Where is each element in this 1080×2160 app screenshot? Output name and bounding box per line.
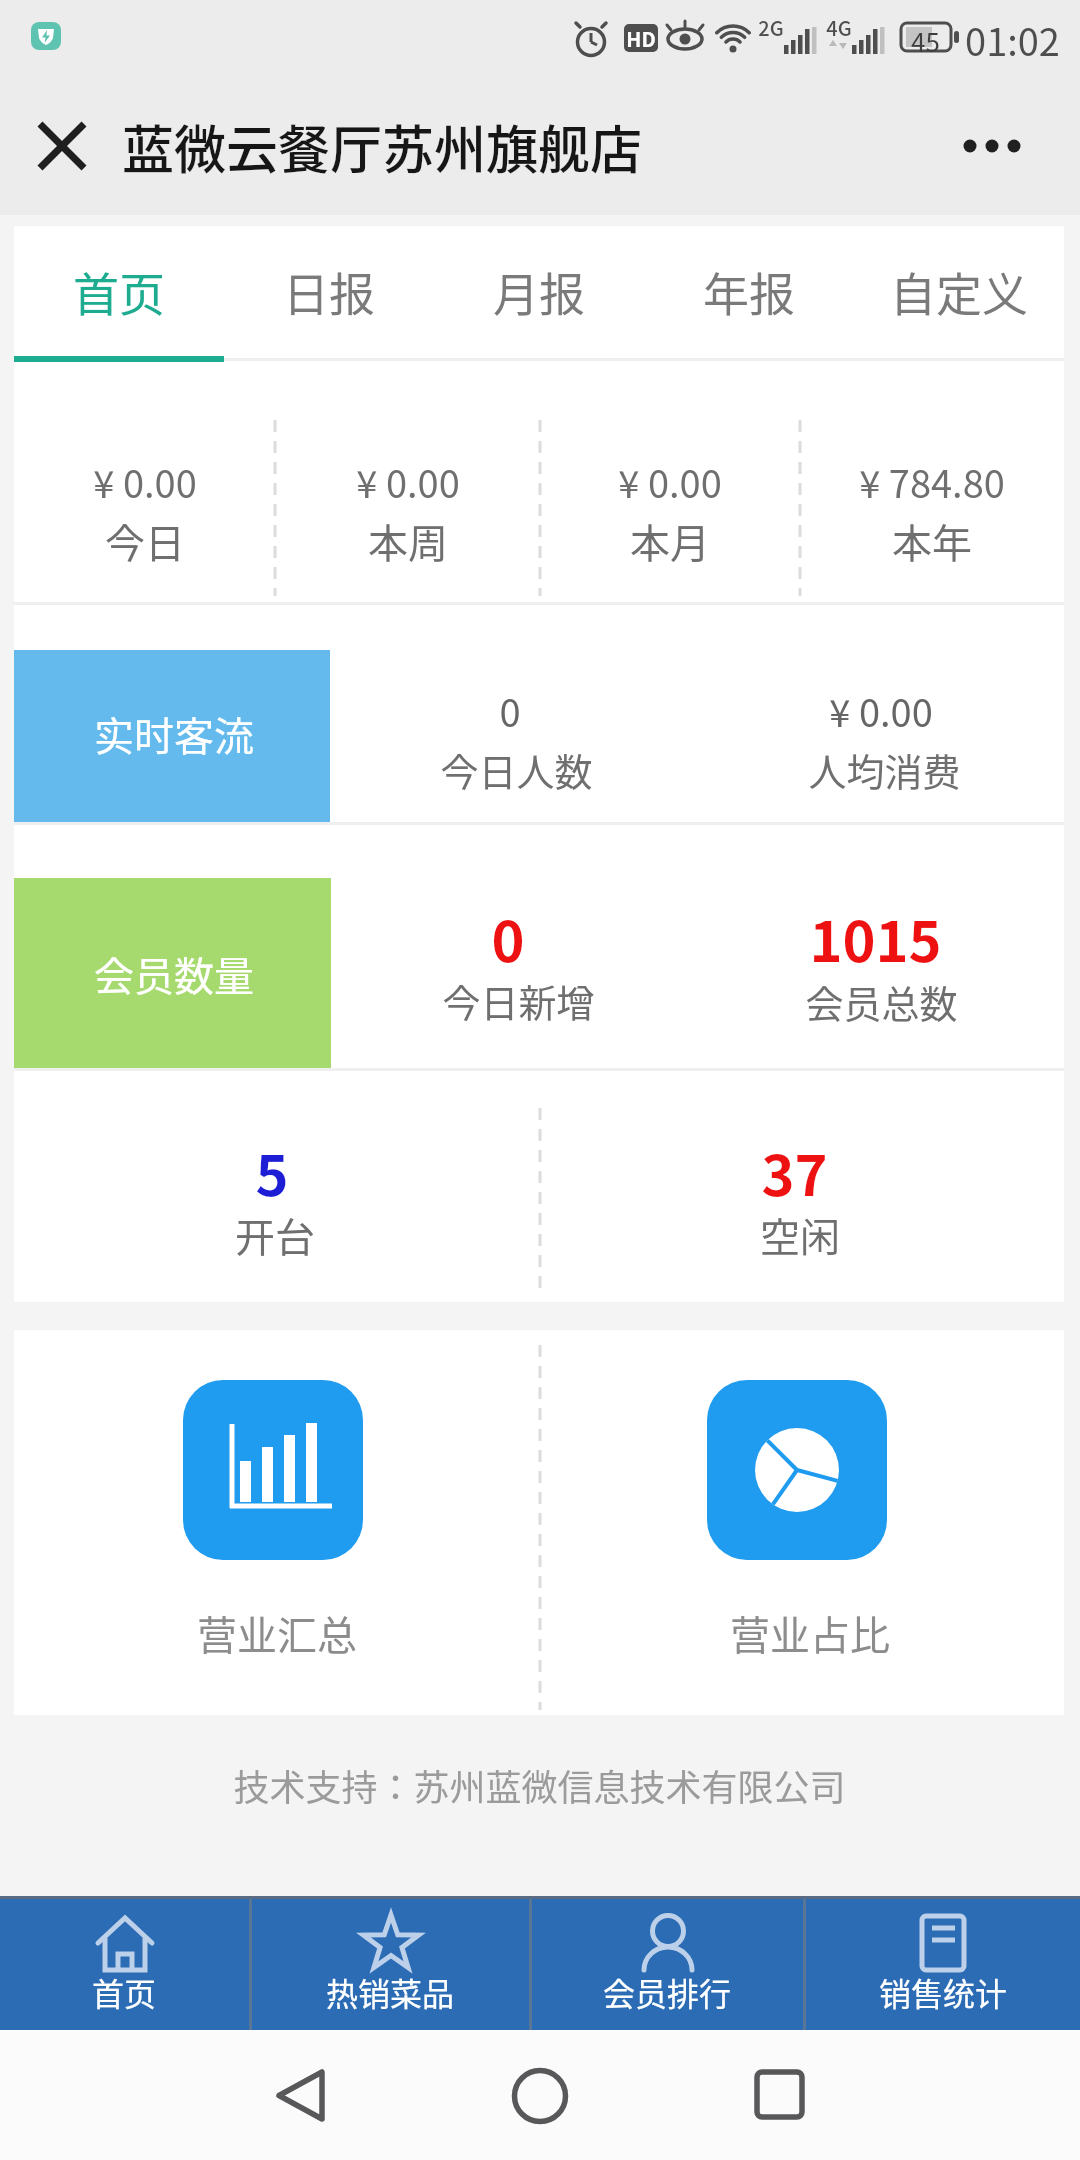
- staticText: 本月: [630, 512, 710, 570]
- button[interactable]: [250, 2045, 350, 2145]
- button[interactable]: 首页: [14, 228, 224, 354]
- button[interactable]: [22, 108, 102, 188]
- staticText: HD: [626, 24, 656, 53]
- staticText: 月报: [493, 258, 585, 325]
- button[interactable]: 会员排行: [532, 1896, 803, 2030]
- staticText: 0: [491, 897, 525, 978]
- button[interactable]: 首页: [0, 1896, 249, 2030]
- button[interactable]: 日报: [224, 228, 434, 354]
- staticText: 热销菜品: [326, 1969, 455, 2015]
- staticText: 今日: [105, 512, 185, 570]
- button[interactable]: 销售统计: [806, 1896, 1080, 2030]
- staticText: 本年: [892, 512, 972, 570]
- staticText: 45: [911, 22, 940, 52]
- button[interactable]: [707, 1380, 887, 1560]
- staticText: 01:02: [965, 12, 1060, 62]
- button[interactable]: 热销菜品: [252, 1896, 529, 2030]
- staticText: 技术支持：苏州蓝微信息技术有限公司: [233, 1759, 846, 1811]
- staticText: 空闲: [760, 1206, 840, 1264]
- staticText: ¥ 0.00: [829, 683, 933, 738]
- staticText: ¥ 784.80: [859, 454, 1005, 509]
- staticText: 会员排行: [603, 1969, 732, 2015]
- staticText: 自定义: [890, 258, 1028, 325]
- staticText: 会员数量: [94, 945, 254, 1003]
- staticText: 0: [499, 683, 521, 738]
- staticText: ¥ 0.00: [618, 454, 722, 509]
- button[interactable]: [490, 2045, 590, 2145]
- staticText: 销售统计: [879, 1969, 1008, 2015]
- staticText: 首页: [92, 1969, 157, 2015]
- staticText: 营业汇总: [197, 1604, 357, 1662]
- button[interactable]: [183, 1380, 363, 1560]
- staticText: 2G: [758, 13, 784, 42]
- button[interactable]: [950, 116, 1040, 176]
- staticText: 会员总数: [805, 974, 958, 1029]
- staticText: 本周: [368, 512, 448, 570]
- staticText: 5: [255, 1131, 289, 1212]
- staticText: 日报: [283, 258, 375, 325]
- staticText: 37: [761, 1131, 828, 1212]
- button[interactable]: 自定义: [854, 228, 1064, 354]
- staticText: 1015: [809, 897, 942, 978]
- button[interactable]: [14, 878, 331, 1070]
- staticText: 开台: [235, 1206, 315, 1264]
- staticText: 年报: [703, 258, 795, 325]
- staticText: 4G: [826, 13, 852, 42]
- staticText: 实时客流: [94, 705, 254, 763]
- staticText: 首页: [73, 258, 165, 325]
- button[interactable]: 年报: [644, 228, 854, 354]
- staticText: 营业占比: [730, 1604, 890, 1662]
- staticText: 蓝微云餐厅苏州旗舰店: [122, 109, 643, 184]
- staticText: ¥ 0.00: [356, 454, 460, 509]
- button[interactable]: 月报: [434, 228, 644, 354]
- button[interactable]: [730, 2045, 830, 2145]
- staticText: 人均消费: [808, 742, 961, 797]
- staticText: ¥ 0.00: [93, 454, 197, 509]
- button[interactable]: [14, 650, 330, 824]
- staticText: 今日新增: [442, 973, 595, 1028]
- staticText: 今日人数: [440, 742, 593, 797]
